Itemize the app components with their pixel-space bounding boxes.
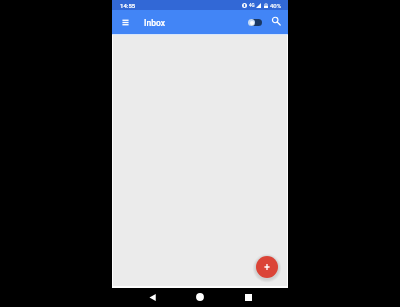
staticText: 14:55 [120,2,136,9]
button[interactable]: Search [268,13,284,29]
button[interactable]: Toggle dark theme [245,15,265,30]
staticText: Inbox [144,18,165,28]
button[interactable]: Back [144,289,160,305]
button[interactable]: Compose new message [256,256,278,278]
staticText: 40% [270,2,282,9]
button[interactable]: Recent apps [240,289,256,305]
button[interactable]: Open navigation drawer [116,13,134,31]
staticText: 4G [249,3,255,8]
button[interactable]: Home [192,289,208,305]
